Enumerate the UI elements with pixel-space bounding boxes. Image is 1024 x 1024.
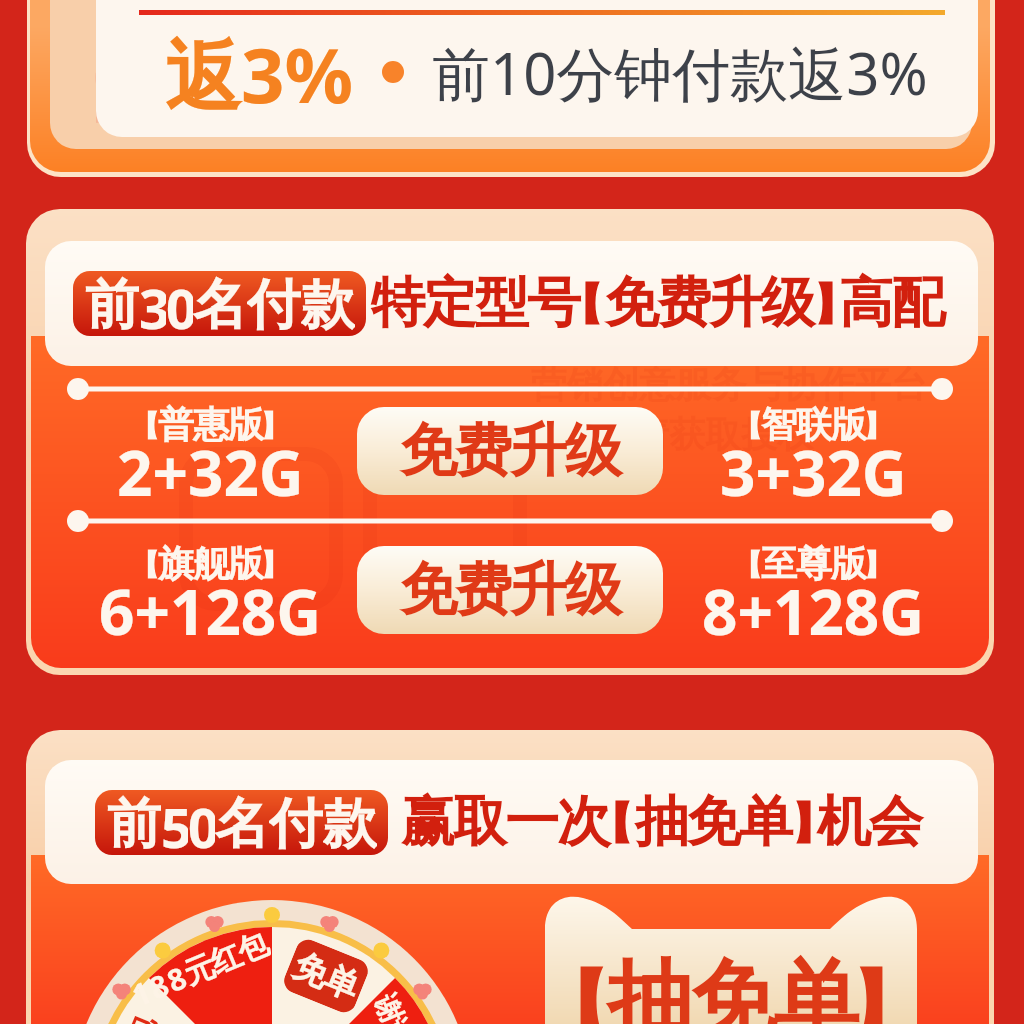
staticText: 谢 (367, 990, 410, 1024)
staticText: 取 (453, 788, 505, 856)
staticText: 免 (605, 269, 657, 337)
staticText: SINCE (78, 0, 160, 127)
staticText: 谢 (377, 1015, 420, 1024)
staticText: 版 (228, 541, 263, 586)
staticText: 升 (510, 554, 565, 626)
staticText: 单 (318, 956, 364, 1009)
staticText: 版 (831, 402, 866, 447)
staticText: 付 (247, 271, 301, 336)
staticText: 免 (690, 947, 773, 1024)
staticText: 抽 (635, 788, 687, 856)
staticText: 级 (565, 554, 620, 626)
staticText: 配 (891, 269, 943, 337)
staticText: 级 (761, 269, 813, 337)
staticText: 免 (400, 554, 455, 626)
staticText: 前 (85, 271, 139, 336)
staticText: 款 (323, 790, 377, 855)
staticText: 尊 (796, 541, 831, 586)
staticText: 版 (228, 402, 263, 447)
button[interactable]: 免 (357, 407, 663, 495)
staticText: 单 (773, 947, 856, 1024)
staticText: 高 (839, 269, 891, 337)
staticText: 一 (505, 788, 557, 856)
staticText: 普 (158, 402, 193, 447)
staticText: 特 (371, 269, 423, 337)
staticText: 机 (817, 788, 869, 856)
staticText: 级 (565, 415, 620, 487)
staticText: 2+32G (117, 430, 304, 514)
staticText: 版 (831, 541, 866, 586)
staticText: 舰 (193, 541, 228, 586)
staticText: 至 (761, 541, 796, 586)
staticText: 前10分钟付款返3% (432, 33, 928, 112)
staticText: 型 (475, 269, 527, 337)
staticText: 免 (287, 944, 334, 996)
staticText: 赢 (401, 788, 453, 856)
staticText: 名 (215, 790, 269, 855)
staticText: 升 (709, 269, 761, 337)
staticText: 名 (193, 271, 247, 336)
staticText: 智 (761, 402, 796, 447)
staticText: 付 (269, 790, 323, 855)
staticText: 3+32G (720, 430, 907, 514)
staticText: 号 (527, 269, 579, 337)
staticText: 升 (510, 415, 565, 487)
staticText: 旗 (158, 541, 193, 586)
staticText: 费 (657, 269, 709, 337)
staticText: 8+128G (702, 569, 925, 653)
staticText: 5 (161, 790, 188, 855)
staticText: 单 (739, 788, 791, 856)
staticText: 费 (455, 554, 510, 626)
staticText: 前 (107, 790, 161, 855)
staticText: 包 (232, 925, 273, 971)
staticText: 惠 (193, 402, 228, 447)
button[interactable]: 前 (73, 271, 366, 336)
button[interactable]: 前 (95, 790, 388, 855)
staticText: 免 (400, 415, 455, 487)
staticText: 免 (687, 788, 739, 856)
staticText: 8 (143, 964, 175, 1008)
staticText: 会 (869, 788, 921, 856)
staticText: 营销创意服务与协作平台 (531, 362, 927, 407)
staticText: 0 (188, 790, 215, 855)
staticText: 元 (178, 947, 219, 993)
staticText: 次 (557, 788, 609, 856)
staticText: 费 (455, 415, 510, 487)
staticText: 3 (139, 271, 166, 336)
button[interactable]: 免 (357, 546, 663, 634)
staticText: 6+128G (99, 569, 322, 653)
staticText: 定 (423, 269, 475, 337)
staticText: 包 (116, 1011, 163, 1024)
staticText: 款 (301, 271, 355, 336)
staticText: 返3% (165, 22, 354, 122)
button[interactable]: 抽 (545, 897, 917, 1024)
staticText: 联 (796, 402, 831, 447)
staticText: 0 (166, 271, 193, 336)
staticText: 1 (126, 971, 158, 1016)
staticText: 红 (205, 936, 246, 982)
staticText: 8 (161, 956, 193, 1001)
staticText: 商用请获取授权 (561, 412, 813, 457)
staticText: 抽 (607, 947, 690, 1024)
